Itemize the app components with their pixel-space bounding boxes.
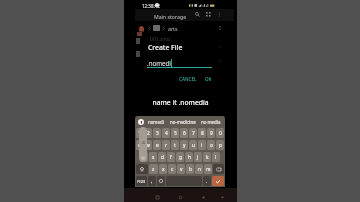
button[interactable]: k	[203, 152, 211, 162]
staticText: 12	[218, 58, 222, 63]
staticText: ?123	[137, 179, 146, 184]
staticText: .nomedi	[147, 59, 171, 67]
staticText: z	[152, 166, 155, 173]
button[interactable]: 8	[198, 128, 206, 138]
button[interactable]: no media	[201, 119, 221, 125]
button[interactable]: Emoji	[157, 176, 165, 186]
staticText: t	[174, 142, 176, 149]
staticText: g	[179, 154, 182, 161]
staticText: p	[219, 142, 222, 149]
button[interactable]: More options	[215, 10, 223, 18]
button[interactable]: Recents	[154, 194, 161, 201]
staticText: 8	[201, 130, 204, 137]
button[interactable]: u	[189, 140, 197, 150]
button[interactable]: d	[158, 152, 166, 162]
button[interactable]: Home	[138, 25, 145, 32]
button[interactable]: .	[203, 176, 211, 186]
staticText: no-medicine	[170, 119, 196, 125]
button[interactable]: Sort	[217, 25, 223, 31]
button[interactable]: p	[216, 140, 224, 150]
staticText: 3	[156, 130, 159, 137]
staticText: name it .nomedia	[152, 98, 209, 107]
staticText: Create File	[148, 43, 183, 52]
button[interactable]: Enter	[212, 176, 224, 186]
button[interactable]: OK	[203, 75, 214, 83]
staticText: n	[198, 166, 201, 173]
staticText: a	[142, 139, 145, 146]
staticText: 7	[192, 130, 195, 137]
button[interactable]: n	[195, 164, 203, 174]
button[interactable]: nomedi	[148, 119, 164, 125]
button[interactable]: arts	[168, 25, 178, 32]
button[interactable]: b	[186, 164, 194, 174]
button[interactable]: 1	[136, 128, 143, 138]
staticText: v	[180, 166, 183, 173]
button[interactable]: a	[139, 127, 147, 162]
button[interactable]: r	[162, 140, 170, 150]
button[interactable]: t	[171, 140, 179, 150]
button[interactable]: 7	[189, 128, 197, 138]
button[interactable]: f	[167, 152, 175, 162]
staticText: 0	[219, 130, 222, 137]
button[interactable]: 4	[162, 128, 170, 138]
staticText: u	[192, 142, 195, 149]
button[interactable]: ?123	[136, 176, 147, 186]
staticText: l	[215, 154, 217, 161]
staticText: CANCEL	[179, 76, 197, 82]
button[interactable]: Shift	[136, 164, 148, 174]
button[interactable]: l	[212, 152, 220, 162]
button[interactable]: a	[140, 152, 148, 162]
button[interactable]: 0	[216, 128, 224, 138]
button[interactable]: x	[159, 164, 167, 174]
button[interactable]: h	[185, 152, 193, 162]
button[interactable]: 2	[144, 128, 152, 138]
button[interactable]: Main storage	[154, 13, 187, 20]
button[interactable]: Hide keyboard	[219, 194, 226, 201]
button[interactable]: z	[149, 164, 158, 174]
button[interactable]: 5	[171, 128, 179, 138]
staticText: w	[146, 142, 150, 149]
button[interactable]	[135, 29, 234, 38]
button[interactable]: i	[198, 140, 206, 150]
button[interactable]: q	[136, 140, 143, 150]
button[interactable]: s	[149, 152, 157, 162]
button[interactable]: Voice input	[138, 119, 144, 125]
staticText: j	[197, 154, 199, 161]
button[interactable]: Search	[193, 10, 201, 18]
button[interactable]: c	[168, 164, 176, 174]
button[interactable]: w	[144, 140, 152, 150]
staticText: .	[206, 178, 208, 185]
staticText: 001.png	[150, 35, 170, 42]
button[interactable]: o	[207, 140, 215, 150]
staticText: 4	[165, 130, 168, 137]
button[interactable]: 9	[207, 128, 215, 138]
button[interactable]: Home	[177, 194, 184, 201]
button[interactable]: Back	[200, 194, 207, 201]
staticText: y	[183, 142, 186, 149]
button[interactable]: CANCEL	[177, 75, 199, 83]
staticText: m	[206, 166, 211, 173]
staticText: 12:38:42	[142, 3, 160, 9]
staticText: c	[171, 166, 174, 173]
staticText: 6	[183, 130, 186, 137]
button[interactable]: m	[204, 164, 212, 174]
button[interactable]: 3	[153, 128, 161, 138]
button[interactable]: no-medicine	[170, 119, 196, 125]
staticText: arts	[168, 25, 178, 32]
staticText: e	[156, 142, 159, 149]
button[interactable]: e	[153, 140, 161, 150]
button[interactable]: v	[177, 164, 185, 174]
button[interactable]: Backspace	[213, 164, 224, 174]
button[interactable]: ,	[148, 176, 156, 186]
button[interactable]: g	[176, 152, 184, 162]
button[interactable]: j	[194, 152, 202, 162]
button[interactable]: View mode	[204, 10, 212, 18]
button[interactable]: 6	[180, 128, 188, 138]
staticText: r	[165, 142, 167, 149]
button[interactable]: y	[180, 140, 188, 150]
staticText: f	[170, 154, 172, 161]
